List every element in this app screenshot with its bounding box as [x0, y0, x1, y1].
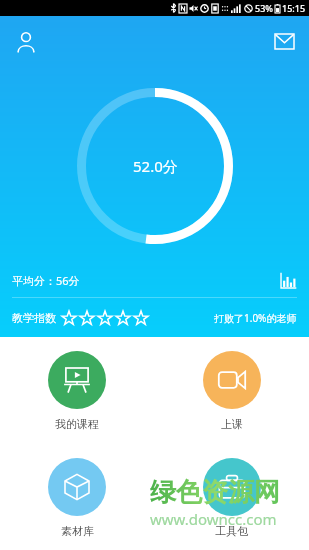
button[interactable]: 教学指数 — [0, 298, 309, 337]
button[interactable]: Messages — [267, 24, 301, 58]
button[interactable]: 素材库 — [0, 458, 154, 538]
button[interactable]: 我的课程 — [0, 351, 154, 431]
staticText: 上课 — [221, 417, 243, 431]
button[interactable]: 上课 — [154, 351, 309, 431]
button[interactable]: 平均分：56分 — [0, 263, 309, 297]
staticText: www.downcc.com — [150, 509, 277, 529]
staticText: 15:15 — [282, 2, 306, 14]
button[interactable]: Profile — [8, 24, 44, 60]
staticText: 教学指数 — [12, 311, 56, 325]
staticText: 我的课程 — [55, 417, 99, 431]
staticText: 打败了1.0%的老师 — [214, 311, 297, 325]
staticText: 绿色资源网 — [150, 476, 280, 509]
staticText: 素材库 — [61, 524, 94, 538]
staticText: 平均分：56分 — [12, 273, 80, 288]
staticText: 53% — [255, 2, 273, 14]
button[interactable]: 工具包 — [154, 458, 309, 538]
staticText: 工具包 — [215, 524, 248, 538]
staticText: 52.0分 — [133, 156, 178, 176]
